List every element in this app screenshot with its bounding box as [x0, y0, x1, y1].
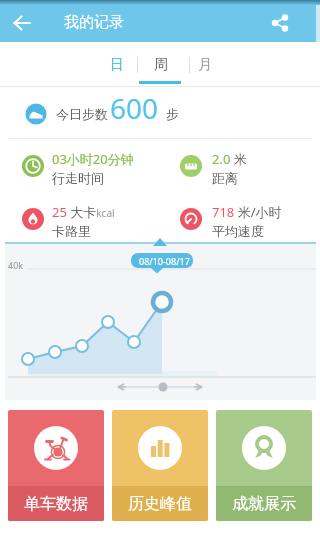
- staticText: 今日步数: [56, 106, 108, 122]
- staticText: 成就展示: [232, 494, 296, 514]
- staticText: 03小时20分钟: [52, 150, 134, 168]
- button[interactable]: 成就展示: [216, 410, 312, 521]
- staticText: 距离: [212, 170, 238, 186]
- staticText: 历史峰值: [128, 494, 192, 514]
- staticText: 周: [154, 56, 168, 74]
- staticText: 卡路里: [52, 223, 91, 239]
- staticText: 2.0 米: [212, 150, 247, 168]
- staticText: 单车数据: [24, 494, 88, 514]
- staticText: 600: [110, 89, 159, 127]
- button[interactable]: [262, 6, 298, 40]
- staticText: 步: [166, 106, 179, 122]
- button[interactable]: [4, 6, 40, 40]
- staticText: 行走时间: [52, 170, 104, 186]
- staticText: 08/10-08/17: [139, 255, 190, 267]
- staticText: 我的记录: [64, 13, 124, 32]
- staticText: 25 大卡kcal: [52, 203, 115, 221]
- staticText: 平均速度: [212, 223, 264, 239]
- button[interactable]: 月: [184, 42, 226, 87]
- staticText: 40k: [8, 259, 24, 271]
- button[interactable]: 周: [140, 42, 182, 87]
- button[interactable]: 单车数据: [8, 410, 104, 521]
- staticText: 718 米/小时: [212, 203, 282, 221]
- button[interactable]: 历史峰值: [112, 410, 208, 521]
- button[interactable]: 日: [96, 42, 138, 87]
- staticText: 月: [198, 56, 212, 74]
- staticText: 日: [110, 56, 124, 74]
